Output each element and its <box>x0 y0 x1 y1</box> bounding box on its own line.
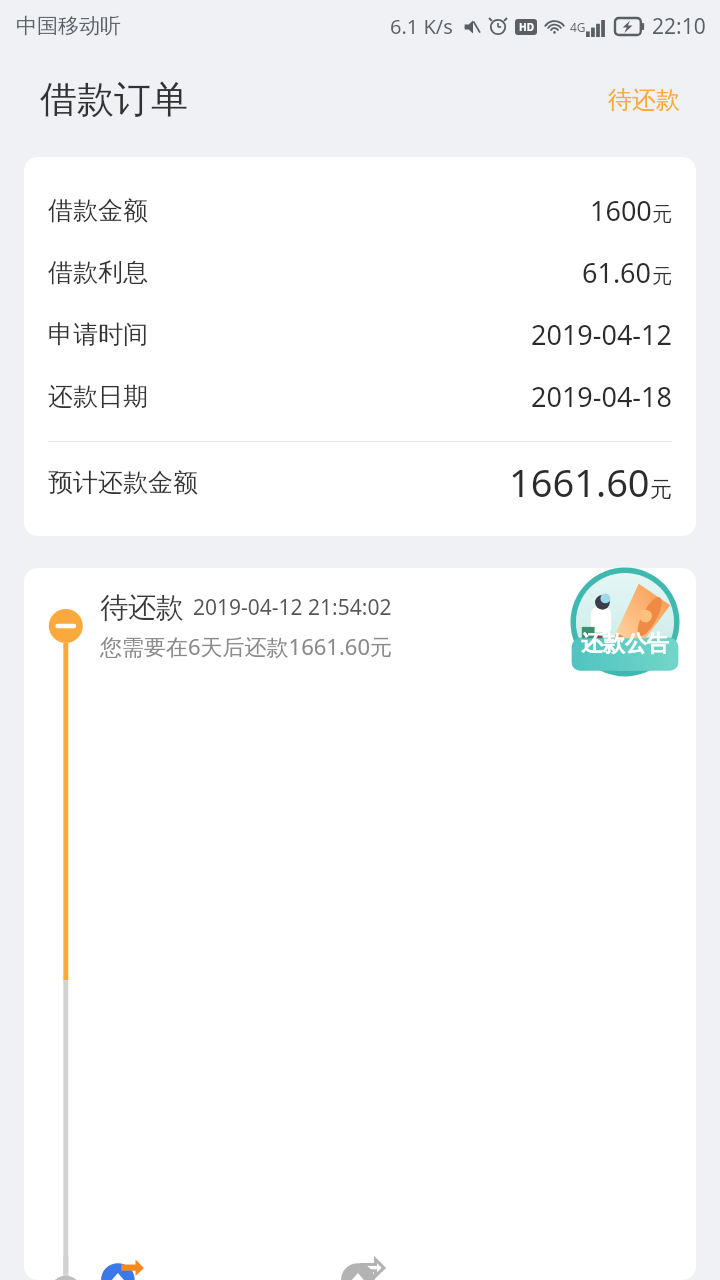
button[interactable]: 借款金额 <box>24 157 696 536</box>
staticText: 待还款 <box>100 590 184 625</box>
staticText: 申请时间 <box>48 319 148 350</box>
staticText: 4G <box>570 19 586 35</box>
staticText: 元 <box>652 264 672 289</box>
staticText: 还款公告 <box>581 630 669 658</box>
staticText: 借款利息 <box>48 257 148 288</box>
button[interactable]: 待还款 <box>24 590 696 1256</box>
staticText: 元 <box>652 202 672 227</box>
staticText: 1661.60 <box>509 456 650 508</box>
staticText: 您需要在6天后还款1661.60元 <box>100 631 392 661</box>
staticText: 6.1 K/s <box>390 13 453 40</box>
staticText: 2019-04-12 21:54:02 <box>193 593 392 622</box>
staticText: 元 <box>650 476 672 504</box>
staticText: 61.60 <box>582 254 652 291</box>
staticText: 22:10 <box>652 12 706 41</box>
staticText: 1600 <box>590 192 652 229</box>
staticText: 中国移动听 <box>16 13 121 39</box>
staticText: 借款金额 <box>48 195 148 226</box>
button[interactable]: 还款公告 <box>567 564 683 680</box>
staticText: 预计还款金额 <box>48 467 198 498</box>
staticText: 待还款 <box>608 85 680 115</box>
staticText: 还款日期 <box>48 381 148 412</box>
staticText: HD <box>519 20 534 34</box>
staticText: 借款订单 <box>40 76 188 123</box>
staticText: 2019-04-12 <box>531 316 672 353</box>
staticText: 2019-04-18 <box>531 378 672 415</box>
button[interactable]: 待还款 <box>608 85 680 115</box>
